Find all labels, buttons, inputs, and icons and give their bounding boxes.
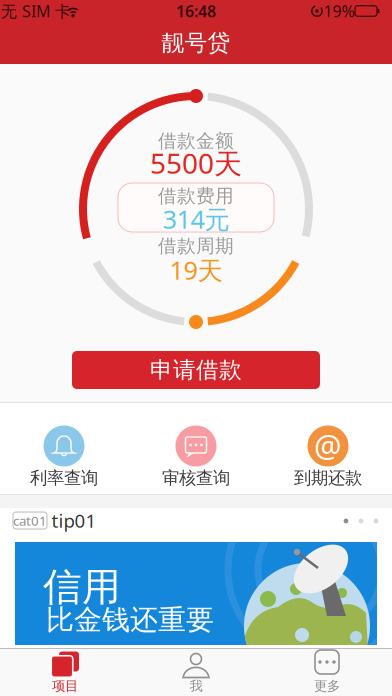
staticText: 16:48 <box>176 0 216 22</box>
staticText: cat01 <box>13 512 47 529</box>
staticText: 19% <box>323 0 354 22</box>
staticText: 审核查询 <box>162 467 230 489</box>
button[interactable]: 项目 <box>0 649 130 696</box>
staticText: 借款周期 <box>158 234 234 257</box>
staticText: 更多 <box>314 678 340 694</box>
staticText: 314元 <box>162 202 229 236</box>
staticText: @ <box>314 425 342 465</box>
staticText: 靓号贷 <box>161 29 230 57</box>
staticText: 利率查询 <box>30 467 98 489</box>
button[interactable]: 我 <box>131 649 261 696</box>
staticText: 到期还款 <box>294 467 362 489</box>
staticText: 申请借款 <box>150 356 242 384</box>
staticText: 借款金额 <box>158 129 234 152</box>
staticText: 项目 <box>52 678 78 694</box>
staticText: 信用 <box>43 563 121 611</box>
staticText: 我 <box>189 678 202 694</box>
button[interactable]: @ <box>273 421 383 495</box>
staticText: 无 SIM 卡 <box>1 0 71 22</box>
button[interactable]: 申请借款 <box>72 351 320 389</box>
staticText: 比金钱还重要 <box>46 603 214 637</box>
staticText: 借款费用 <box>158 184 234 207</box>
staticText: 5500天 <box>150 144 242 182</box>
staticText: 19天 <box>169 253 222 287</box>
button[interactable]: 更多 <box>262 649 392 696</box>
button[interactable]: 利率查询 <box>9 421 119 495</box>
button[interactable]: 信用 <box>15 542 377 645</box>
staticText: tip01 <box>51 508 96 533</box>
button[interactable]: 审核查询 <box>141 421 251 495</box>
